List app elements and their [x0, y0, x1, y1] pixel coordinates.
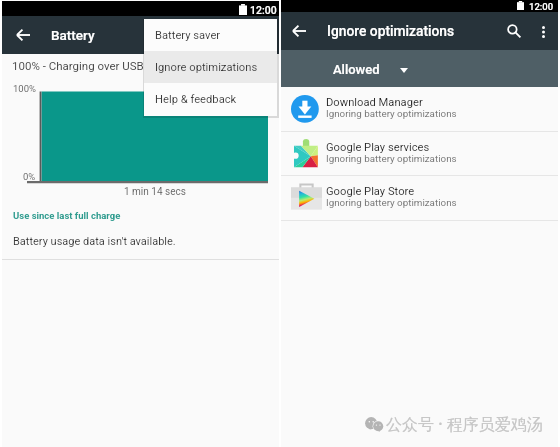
button[interactable]: Navigate up: [7, 23, 38, 47]
staticText: Battery usage data isn't available.: [13, 235, 176, 248]
button[interactable]: Allowed: [281, 50, 558, 87]
button[interactable]: Google Play services: [281, 132, 558, 176]
staticText: 公众号 · 程序员爱鸡汤: [386, 413, 543, 435]
staticText: 12:00: [529, 1, 554, 12]
staticText: Ignore optimizations: [327, 23, 455, 39]
staticText: Ignoring battery optimizations: [326, 197, 457, 208]
staticText: 12:00: [250, 4, 277, 16]
button[interactable]: Ignore optimizations: [144, 51, 277, 83]
staticText: 100%: [13, 83, 36, 94]
staticText: Battery saver: [155, 29, 221, 42]
staticText: Ignoring battery optimizations: [326, 108, 457, 119]
button[interactable]: Help & feedback: [144, 83, 277, 115]
button[interactable]: Google Play Store: [281, 176, 558, 220]
staticText: Ignoring battery optimizations: [326, 153, 457, 164]
staticText: Download Manager: [326, 96, 423, 109]
staticText: Allowed: [333, 62, 380, 77]
button[interactable]: Search: [503, 20, 525, 42]
staticText: Ignore optimizations: [155, 61, 258, 74]
staticText: Google Play Store: [326, 185, 415, 198]
staticText: 1 min 14 secs: [124, 186, 186, 198]
staticText: Battery: [51, 27, 95, 43]
staticText: 0%: [23, 171, 36, 182]
button[interactable]: Battery saver: [144, 19, 277, 51]
button[interactable]: Use since last full charge: [13, 210, 121, 221]
staticText: Google Play services: [326, 141, 430, 154]
button[interactable]: Navigate up: [285, 22, 312, 40]
staticText: 100% - Charging over USB: [12, 59, 144, 72]
staticText: Help & feedback: [155, 93, 237, 106]
button[interactable]: Download Manager: [281, 87, 558, 131]
button[interactable]: More options: [532, 21, 554, 43]
